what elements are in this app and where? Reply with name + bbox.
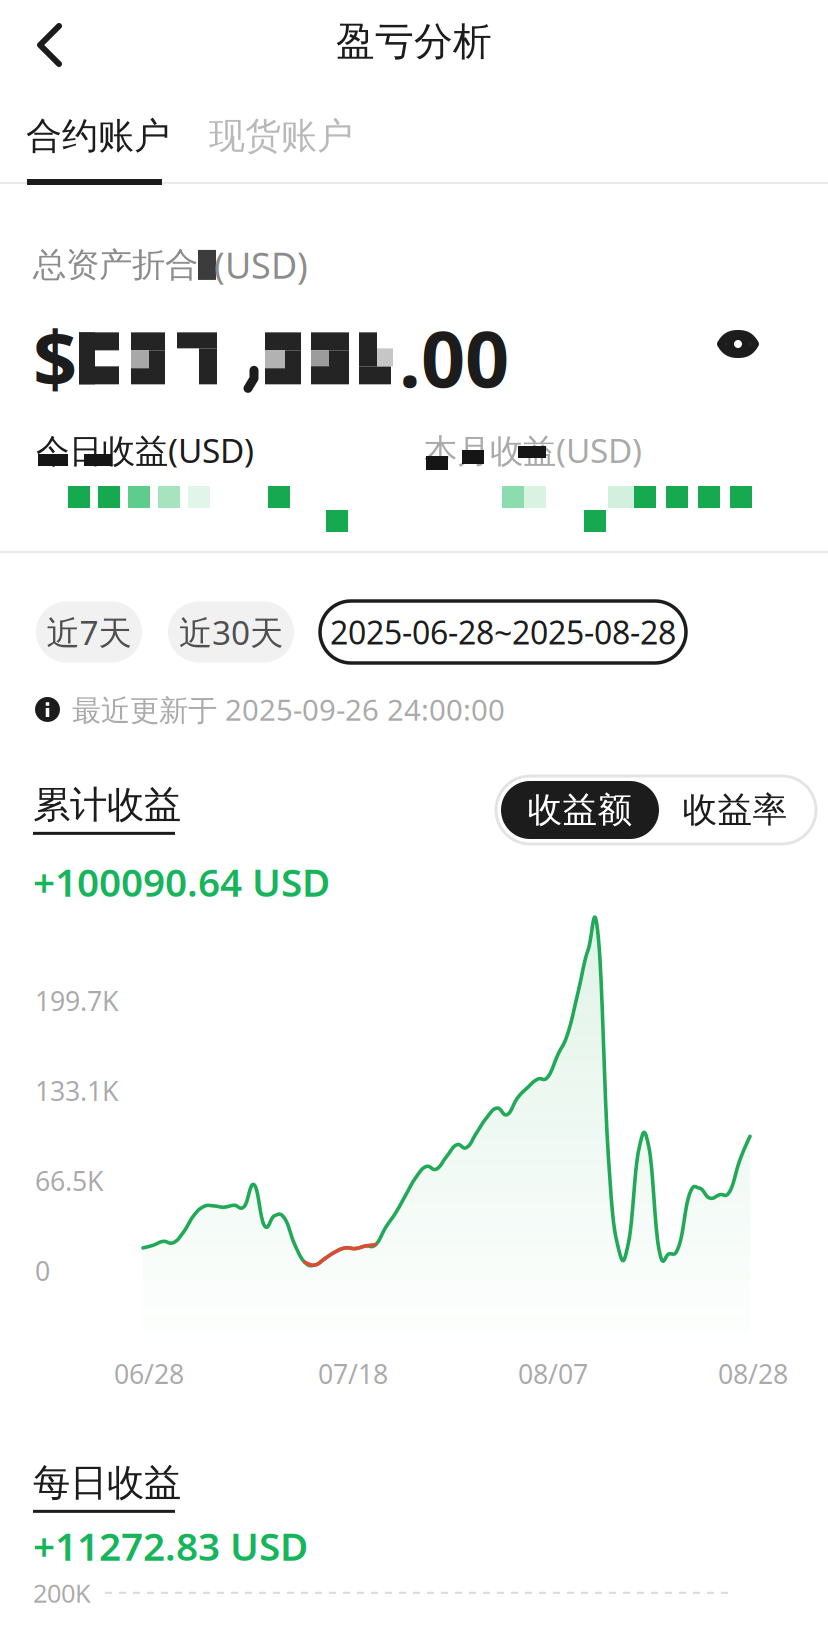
staticText: 2025-06-28~2025-08-28 bbox=[330, 611, 676, 653]
staticText: $ bbox=[33, 306, 77, 409]
staticText: 累计收益 bbox=[33, 782, 181, 828]
button[interactable]: 收益额 bbox=[501, 781, 659, 839]
staticText: (USD) bbox=[214, 241, 308, 289]
staticText: 收益率 bbox=[682, 789, 787, 831]
button[interactable]: 近7天 bbox=[36, 601, 142, 662]
button[interactable]: 收益率 bbox=[659, 781, 811, 839]
staticText: +100090.64 USD bbox=[33, 856, 330, 907]
button[interactable]: 合约账户 bbox=[26, 114, 170, 158]
staticText: 每日收益 bbox=[33, 1460, 181, 1506]
staticText: 今日收益(USD) bbox=[36, 428, 254, 472]
staticText: 199.7K bbox=[35, 983, 119, 1018]
staticText: 66.5K bbox=[35, 1163, 104, 1198]
staticText: 本月收益(USD) bbox=[424, 428, 642, 472]
staticText: 07/18 bbox=[318, 1356, 388, 1391]
staticText: 0 bbox=[35, 1253, 50, 1288]
button[interactable]: Hide balance bbox=[718, 330, 758, 358]
staticText: 06/28 bbox=[114, 1356, 184, 1391]
button[interactable]: Back bbox=[0, 16, 65, 74]
staticText: +11272.83 USD bbox=[33, 1520, 308, 1571]
staticText: 133.1K bbox=[35, 1073, 119, 1108]
staticText: 现货账户 bbox=[209, 114, 353, 158]
staticText: .00 bbox=[399, 306, 509, 409]
button[interactable]: 2025-06-28~2025-08-28 bbox=[320, 601, 686, 663]
staticText: 盈亏分析 bbox=[336, 18, 492, 65]
staticText: 总资产折合 bbox=[33, 244, 198, 285]
staticText: 最近更新于 2025-09-26 24:00:00 bbox=[72, 690, 505, 729]
staticText: 200K bbox=[33, 1576, 91, 1610]
staticText: 08/07 bbox=[518, 1356, 588, 1391]
button[interactable]: 现货账户 bbox=[209, 114, 353, 158]
staticText: 08/28 bbox=[718, 1356, 788, 1391]
staticText: 近30天 bbox=[179, 610, 283, 654]
button[interactable]: 近30天 bbox=[168, 601, 294, 662]
staticText: 收益额 bbox=[527, 789, 632, 831]
staticText: 近7天 bbox=[46, 610, 131, 654]
staticText: 合约账户 bbox=[26, 114, 170, 158]
